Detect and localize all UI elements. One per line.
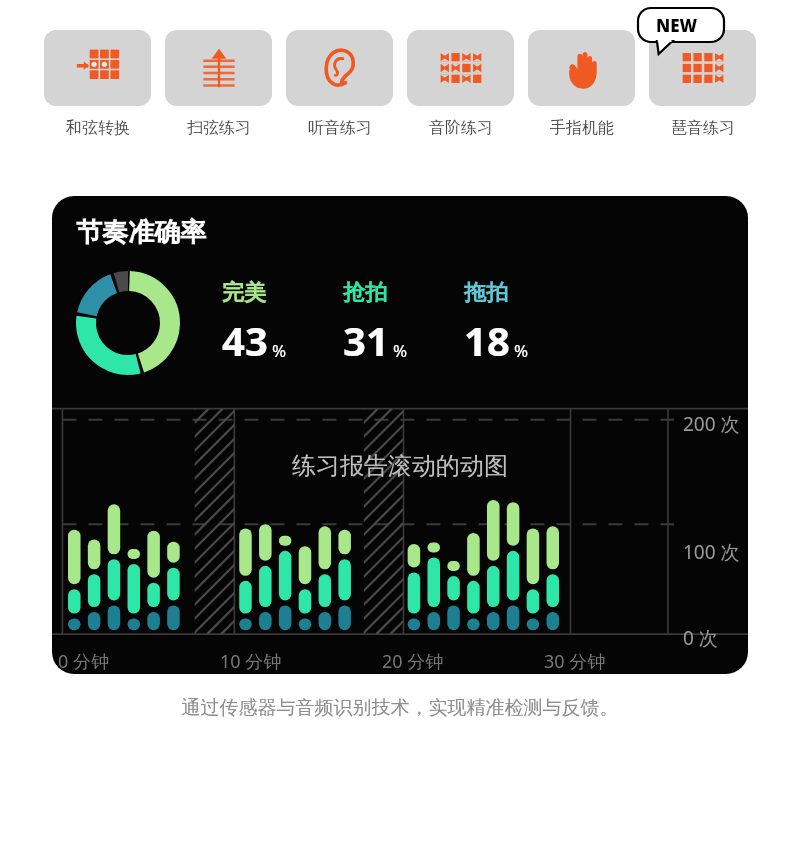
staticText: 完美 <box>222 279 266 307</box>
staticText: % <box>514 339 529 362</box>
staticText: 练习报告滚动的动图 <box>292 451 508 481</box>
staticText: % <box>272 339 287 362</box>
staticText: 31 <box>343 313 389 367</box>
staticText: 和弦转换 <box>66 118 130 138</box>
staticText: 200 次 <box>683 411 740 437</box>
button[interactable]: 扫弦练习 <box>165 8 272 138</box>
staticText: 节奏准确率 <box>76 216 206 249</box>
staticText: 手指机能 <box>550 118 614 138</box>
staticText: 扫弦练习 <box>187 118 251 138</box>
staticText: 20 分钟 <box>382 649 444 674</box>
button[interactable]: 音阶练习 <box>407 8 514 138</box>
button[interactable]: 手指机能 <box>528 8 635 138</box>
button[interactable]: 节奏准确率 <box>52 196 748 674</box>
staticText: 通过传感器与音频识别技术，实现精准检测与反馈。 <box>0 696 800 720</box>
staticText: 0 次 <box>683 625 718 651</box>
staticText: 10 分钟 <box>220 649 282 674</box>
button[interactable]: 和弦转换 <box>44 8 151 138</box>
button[interactable]: 琶音练习 <box>649 8 756 138</box>
button[interactable]: 听音练习 <box>286 8 393 138</box>
staticText: % <box>393 339 408 362</box>
staticText: NEW <box>656 14 698 37</box>
staticText: 43 <box>222 313 268 367</box>
staticText: 听音练习 <box>308 118 372 138</box>
staticText: 30 分钟 <box>544 649 606 674</box>
staticText: 拖拍 <box>464 279 508 307</box>
staticText: 音阶练习 <box>429 118 493 138</box>
staticText: 18 <box>464 313 510 367</box>
staticText: 琶音练习 <box>671 118 735 138</box>
staticText: 抢拍 <box>343 279 387 307</box>
staticText: 0 分钟 <box>58 649 109 674</box>
staticText: 100 次 <box>683 539 740 565</box>
